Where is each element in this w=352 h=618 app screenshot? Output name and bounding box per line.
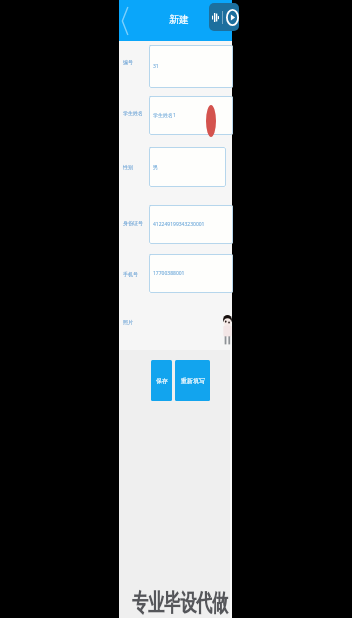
staticText: 学生姓名1 — [153, 112, 176, 119]
staticText: 编号 — [123, 59, 133, 65]
staticText: 性别 — [123, 164, 133, 170]
button[interactable]: Back — [119, 6, 131, 36]
button[interactable]: 学生姓名1 — [149, 96, 233, 135]
button[interactable]: 重新填写 — [175, 360, 210, 401]
button[interactable]: Video player controls — [209, 3, 239, 31]
staticText: 身份证号 — [123, 220, 143, 226]
staticText: 新建 — [169, 13, 189, 26]
button[interactable]: 17700388001 — [149, 254, 233, 293]
staticText: 照片 — [123, 319, 133, 325]
staticText: 手机号 — [123, 271, 138, 277]
button[interactable]: 保存 — [151, 360, 172, 401]
staticText: 保存 — [156, 377, 168, 385]
staticText: 17700388001 — [153, 270, 185, 277]
button[interactable]: 412249199343230001 — [149, 205, 233, 244]
staticText: 男 — [153, 164, 158, 170]
staticText: 重新填写 — [181, 377, 205, 385]
staticText: 31 — [153, 63, 159, 70]
staticText: 412249199343230001 — [153, 221, 205, 228]
staticText: 学生姓名 — [123, 110, 143, 116]
button[interactable]: 31 — [149, 45, 233, 88]
staticText: 专业毕设代做 — [132, 588, 228, 618]
button[interactable]: 男 — [149, 147, 226, 187]
